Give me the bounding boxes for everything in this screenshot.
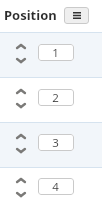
button[interactable]: 2 — [38, 89, 74, 106]
button[interactable]: Reorder — [16, 89, 26, 108]
button[interactable]: Reorder — [16, 178, 26, 197]
staticText: 3 — [52, 135, 59, 151]
button[interactable]: 1 — [38, 44, 74, 61]
button[interactable]: Reorder — [16, 134, 26, 153]
staticText: 4 — [52, 179, 59, 195]
staticText: 2 — [52, 90, 59, 106]
staticText: Position — [4, 6, 57, 24]
button[interactable]: 4 — [38, 178, 74, 195]
button[interactable]: 3 — [38, 134, 74, 151]
button[interactable]: Menu — [64, 7, 89, 24]
button[interactable]: Reorder — [16, 44, 26, 63]
staticText: 1 — [52, 45, 59, 61]
